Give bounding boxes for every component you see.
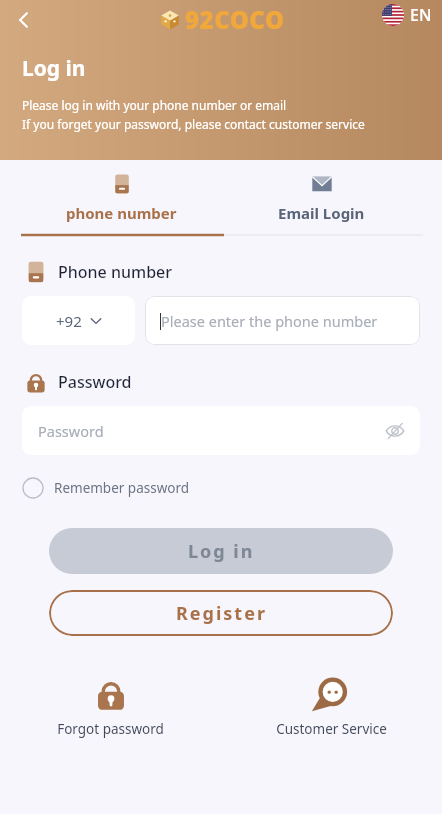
- button[interactable]: Password: [22, 406, 420, 455]
- staticText: Customer Service: [276, 720, 387, 738]
- staticText: Password: [58, 371, 132, 393]
- staticText: phone number: [66, 203, 177, 223]
- staticText: 92COCO: [185, 3, 285, 36]
- staticText: Phone number: [58, 261, 173, 283]
- staticText: Forgot password: [57, 720, 164, 738]
- staticText: Log in: [22, 54, 86, 83]
- button[interactable]: phone number: [21, 160, 221, 238]
- button[interactable]: EN: [382, 4, 432, 26]
- staticText: +92: [56, 311, 82, 331]
- button[interactable]: Log in: [49, 528, 393, 574]
- button[interactable]: Forgot password: [0, 676, 221, 738]
- staticText: If you forget your password, please cont…: [22, 116, 365, 132]
- staticText: Log in: [188, 539, 255, 564]
- button[interactable]: Remember password: [22, 477, 190, 499]
- staticText: Password: [38, 421, 104, 441]
- staticText: Please enter the phone number: [161, 311, 378, 331]
- staticText: Email Login: [278, 203, 365, 223]
- staticText: Register: [176, 601, 267, 626]
- staticText: EN: [410, 4, 432, 26]
- button[interactable]: Email Login: [221, 160, 421, 238]
- button[interactable]: Customer Service: [221, 676, 442, 738]
- button[interactable]: Back: [6, 2, 42, 38]
- button[interactable]: +92: [22, 296, 135, 345]
- staticText: Remember password: [54, 479, 190, 497]
- button[interactable]: Please enter the phone number: [145, 296, 420, 345]
- button[interactable]: Show password: [380, 416, 410, 446]
- staticText: Please log in with your phone number or …: [22, 97, 287, 113]
- button[interactable]: Register: [49, 590, 393, 636]
